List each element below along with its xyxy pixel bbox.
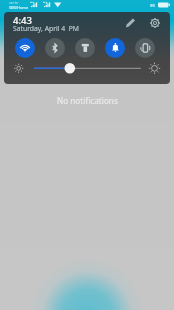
staticText: carrier: [9, 1, 19, 5]
button[interactable]: Wi-Fi: [12, 35, 38, 61]
staticText: No notifications: [57, 95, 118, 106]
staticText: 4:43: [13, 14, 33, 27]
button[interactable]: Edit: [122, 15, 138, 31]
button[interactable]: Bluetooth: [42, 35, 68, 61]
staticText: SIM/Home: [9, 5, 29, 10]
button[interactable]: Vibrate: [132, 35, 158, 61]
button[interactable]: Settings: [147, 15, 163, 31]
button[interactable]: Do not disturb: [102, 35, 128, 61]
staticText: 95: [150, 3, 155, 9]
button[interactable]: Flashlight: [72, 35, 98, 61]
staticText: Saturday, April 4 PM: [13, 24, 79, 33]
